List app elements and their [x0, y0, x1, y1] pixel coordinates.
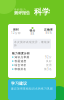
staticText: 能力维度分析 [12, 52, 30, 55]
staticText: 知识点掌握 [14, 55, 29, 59]
staticText: 优秀 [46, 63, 52, 67]
staticText: 第3名 [44, 67, 52, 71]
staticText: 12分钟 [11, 31, 21, 35]
staticText: 得分 [29, 29, 35, 32]
staticText: 88 [30, 32, 34, 36]
staticText: 正确率 [44, 28, 53, 31]
staticText: 学习建议 [11, 81, 27, 86]
staticText: 86% [45, 31, 51, 35]
staticText: 答题速度 [14, 59, 26, 63]
staticText: 建议加强基础知识点的练习巩固 [11, 87, 53, 90]
staticText: 本次测评表现优异，继续保持 [14, 40, 50, 47]
staticText: 92分 [45, 55, 52, 59]
staticText: 良好 [46, 59, 52, 63]
staticText: 科学 [34, 7, 50, 17]
staticText: 用时 [13, 28, 19, 31]
staticText: 学科能力测评 [14, 8, 31, 11]
staticText: 班级排名 [14, 67, 26, 71]
staticText: 测评报告 [14, 10, 30, 15]
staticText: 综合评价 [14, 63, 26, 67]
